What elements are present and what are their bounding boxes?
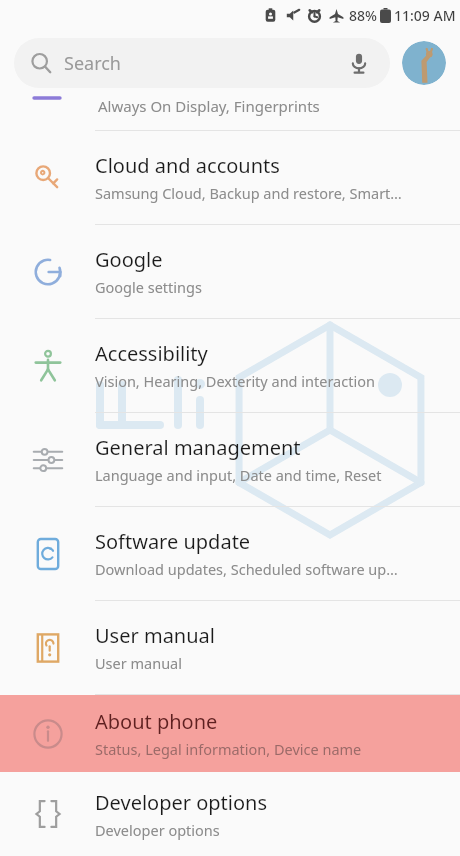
staticText: Samsung Cloud, Backup and restore, Smart… bbox=[95, 183, 402, 203]
button[interactable]: Account bbox=[402, 41, 446, 85]
staticText: Status, Legal information, Device name bbox=[95, 739, 362, 759]
staticText: Google bbox=[95, 246, 163, 273]
staticText: Software update bbox=[95, 528, 251, 555]
staticText: Developer options bbox=[95, 789, 268, 816]
button[interactable]: Search bbox=[14, 38, 390, 88]
button[interactable]: Cloud and accounts bbox=[0, 131, 460, 224]
staticText: General management bbox=[95, 434, 301, 461]
staticText: Always On Display, Fingerprints bbox=[98, 96, 320, 116]
button[interactable]: Software update bbox=[0, 507, 460, 600]
button[interactable]: Accessibility bbox=[0, 319, 460, 412]
staticText: Cloud and accounts bbox=[95, 152, 280, 179]
button[interactable]: General management bbox=[0, 413, 460, 506]
staticText: Search bbox=[64, 51, 121, 76]
staticText: Language and input, Date and time, Reset bbox=[95, 465, 382, 485]
staticText: 11:09 AM bbox=[394, 6, 456, 25]
staticText: Accessibility bbox=[95, 340, 208, 367]
staticText: Google settings bbox=[95, 277, 202, 297]
staticText: User manual bbox=[95, 622, 215, 649]
button[interactable]: About phone bbox=[0, 695, 460, 772]
button[interactable]: Voice search bbox=[344, 48, 374, 78]
staticText: Vision, Hearing, Dexterity and interacti… bbox=[95, 371, 375, 391]
staticText: Developer options bbox=[95, 820, 220, 840]
staticText: Download updates, Scheduled software up… bbox=[95, 559, 398, 579]
staticText: User manual bbox=[95, 653, 182, 673]
staticText: 88% bbox=[349, 6, 377, 25]
button[interactable]: Google bbox=[0, 225, 460, 318]
other: Search bbox=[30, 52, 52, 74]
button[interactable]: User manual bbox=[0, 601, 460, 694]
staticText: About phone bbox=[95, 708, 218, 735]
button[interactable]: Developer options bbox=[0, 772, 460, 856]
